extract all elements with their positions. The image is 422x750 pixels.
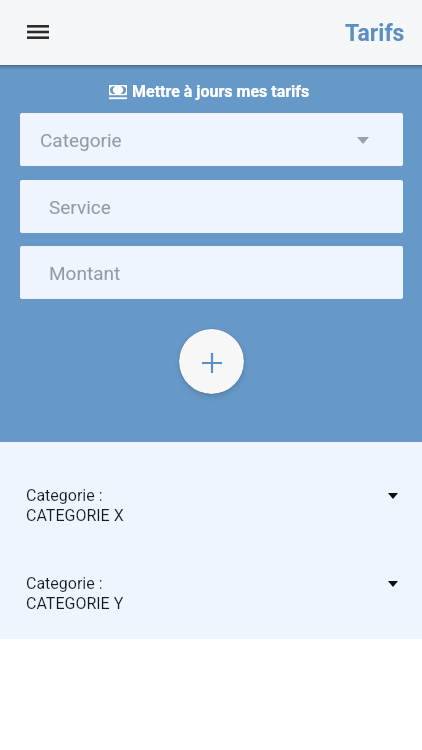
- button[interactable]: Menu: [14, 8, 62, 56]
- staticText: Categorie: [40, 129, 122, 151]
- staticText: Mettre à jours mes tarifs: [132, 82, 310, 101]
- staticText: CATEGORIE X: [26, 506, 124, 525]
- staticText: Service: [49, 196, 111, 218]
- staticText: Categorie :: [26, 486, 103, 505]
- button[interactable]: Categorie :: [0, 486, 422, 526]
- staticText: CATEGORIE Y: [26, 594, 124, 613]
- button[interactable]: Montant: [20, 246, 403, 299]
- staticText: Categorie :: [26, 574, 103, 593]
- staticText: Montant: [49, 262, 121, 284]
- button[interactable]: Ajouter: [179, 329, 244, 394]
- button[interactable]: Categorie: [20, 113, 403, 166]
- button[interactable]: Service: [20, 180, 403, 233]
- button[interactable]: Categorie :: [0, 574, 422, 614]
- staticText: Tarifs: [345, 20, 405, 47]
